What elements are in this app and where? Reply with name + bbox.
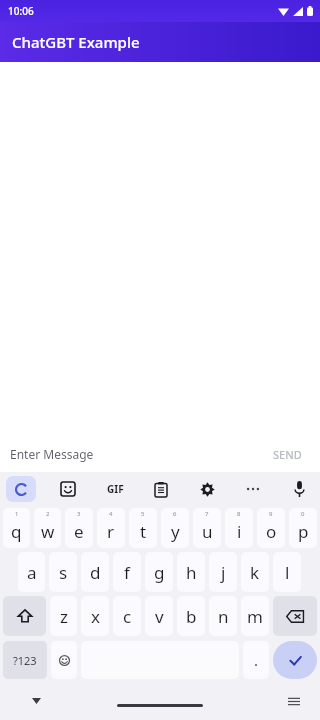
button[interactable]: 2 [34, 508, 61, 548]
button[interactable]: g [145, 552, 173, 592]
button[interactable]: d [81, 552, 109, 592]
button[interactable]: l [273, 552, 301, 592]
button[interactable]: Shift [3, 596, 46, 636]
button[interactable]: b [177, 596, 205, 636]
button[interactable]: 5 [129, 508, 157, 548]
button[interactable]: j [209, 552, 237, 592]
staticText: y [171, 520, 180, 543]
button[interactable]: Settings [192, 476, 222, 502]
staticText: g [154, 561, 165, 584]
button[interactable]: Switch keyboard [284, 691, 304, 711]
staticText: 3 [77, 510, 81, 518]
staticText: . [254, 650, 259, 670]
staticText: 9 [269, 510, 273, 518]
button[interactable]: SEND [265, 443, 310, 466]
staticText: x [91, 605, 100, 628]
staticText: SEND [273, 447, 302, 462]
staticText: b [186, 605, 197, 628]
staticText: 8 [237, 510, 241, 518]
button[interactable]: Google [6, 476, 36, 502]
button[interactable]: Enter Message [10, 446, 265, 462]
staticText: r [107, 520, 115, 543]
staticText: 1 [15, 510, 19, 518]
staticText: 5 [141, 510, 145, 518]
button[interactable]: More options [238, 476, 268, 502]
button[interactable]: 3 [65, 508, 93, 548]
button[interactable]: Voice input [284, 476, 314, 502]
button[interactable]: 9 [257, 508, 285, 548]
staticText: j [221, 561, 226, 584]
button[interactable]: 6 [161, 508, 189, 548]
button[interactable]: s [49, 552, 77, 592]
button[interactable]: Backspace [273, 596, 317, 636]
staticText: Enter Message [10, 446, 94, 462]
staticText: d [90, 561, 101, 584]
staticText: 0 [301, 510, 305, 518]
staticText: m [247, 605, 263, 628]
staticText: q [11, 520, 22, 543]
staticText: ChatGBT Example [12, 32, 140, 52]
staticText: 10:06 [8, 4, 34, 18]
button[interactable]: 7 [193, 508, 221, 548]
button[interactable]: 0 [289, 508, 317, 548]
staticText: e [74, 520, 84, 543]
button[interactable]: a [18, 552, 45, 592]
staticText: 4 [109, 510, 113, 518]
staticText: k [250, 561, 260, 584]
button[interactable]: GIF [100, 476, 130, 502]
staticText: v [155, 605, 164, 628]
staticText: t [140, 520, 147, 543]
staticText: w [41, 520, 55, 543]
staticText: 2 [46, 510, 50, 518]
staticText: i [237, 520, 242, 543]
button[interactable]: Clipboard [146, 476, 176, 502]
staticText: h [186, 561, 197, 584]
button[interactable]: 8 [225, 508, 253, 548]
button[interactable]: n [209, 596, 237, 636]
button[interactable]: m [241, 596, 269, 636]
button[interactable]: c [113, 596, 141, 636]
staticText: 7 [205, 510, 209, 518]
button[interactable]: v [145, 596, 173, 636]
button[interactable]: Hide keyboard [26, 691, 46, 711]
staticText: u [202, 520, 213, 543]
staticText: 6 [173, 510, 177, 518]
staticText: p [298, 520, 309, 543]
button[interactable]: 1 [3, 508, 30, 548]
staticText: s [59, 561, 68, 584]
staticText: c [123, 605, 132, 628]
button[interactable]: Emoji [51, 641, 77, 679]
button[interactable]: Sticker [53, 476, 83, 502]
staticText: o [266, 520, 277, 543]
staticText: ?123 [13, 653, 37, 668]
staticText: a [27, 561, 37, 584]
button[interactable]: k [241, 552, 269, 592]
button[interactable]: x [81, 596, 109, 636]
button[interactable]: Enter [273, 641, 317, 679]
button[interactable]: h [177, 552, 205, 592]
button[interactable]: ?123 [3, 641, 47, 679]
button[interactable]: f [113, 552, 141, 592]
button[interactable]: . [243, 641, 269, 679]
staticText: l [285, 561, 290, 584]
button[interactable]: z [50, 596, 77, 636]
staticText: z [60, 605, 68, 628]
button[interactable]: 4 [97, 508, 125, 548]
staticText: f [124, 561, 130, 584]
staticText: n [218, 605, 229, 628]
staticText: GIF [107, 482, 124, 496]
